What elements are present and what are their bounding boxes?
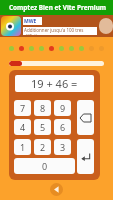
button[interactable]: 7 bbox=[14, 100, 31, 116]
button[interactable]: Enter bbox=[77, 139, 94, 174]
button[interactable]: Backspace bbox=[77, 100, 94, 135]
button[interactable]: 8 bbox=[34, 100, 51, 116]
staticText: 4 bbox=[20, 121, 26, 133]
button[interactable]: 6 bbox=[54, 119, 71, 135]
staticText: 7 bbox=[20, 102, 26, 114]
staticText: 0 bbox=[42, 160, 48, 172]
staticText: Additionner jusqu'a 100 tres difficile bbox=[24, 27, 97, 35]
button[interactable]: 3 bbox=[54, 139, 71, 155]
staticText: MWE bbox=[24, 18, 37, 25]
button[interactable]: 5 bbox=[34, 119, 51, 135]
staticText: 2 bbox=[40, 141, 46, 153]
staticText: 5 bbox=[40, 121, 46, 133]
button[interactable]: 1 bbox=[14, 139, 31, 155]
button[interactable]: 2 bbox=[34, 139, 51, 155]
button[interactable]: Install bbox=[99, 18, 113, 34]
button[interactable]: 0 bbox=[14, 158, 75, 174]
staticText: 6 bbox=[60, 121, 66, 133]
staticText: 1 bbox=[20, 141, 26, 153]
button[interactable]: Back bbox=[50, 183, 63, 196]
button[interactable]: 9 bbox=[54, 100, 71, 116]
staticText: Comptez Bien et Vite Premium bbox=[9, 3, 107, 12]
staticText: 19 + 46 = bbox=[31, 76, 78, 91]
staticText: 8 bbox=[40, 102, 46, 114]
button[interactable]: 4 bbox=[14, 119, 31, 135]
staticText: 3 bbox=[60, 141, 66, 153]
staticText: 9 bbox=[60, 102, 66, 114]
